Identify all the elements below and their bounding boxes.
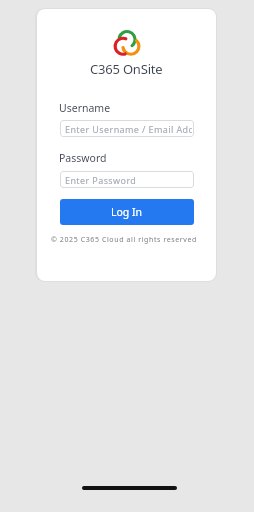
staticText: Enter Password — [65, 174, 137, 186]
staticText: C365 OnSite — [90, 60, 163, 78]
button[interactable]: Log In — [60, 199, 194, 225]
button[interactable]: Enter Username / Email Address — [60, 120, 194, 137]
staticText: Username — [59, 101, 111, 115]
staticText: Enter Username / Email Address — [65, 123, 192, 135]
staticText: Log In — [111, 205, 143, 219]
staticText: © 2025 C365 Cloud all rights reserved — [51, 235, 197, 245]
staticText: Password — [59, 151, 107, 165]
button[interactable]: Enter Password — [60, 171, 194, 188]
